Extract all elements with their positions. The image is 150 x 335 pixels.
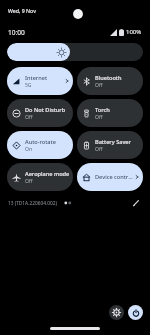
button[interactable]: Edit tiles: [130, 198, 142, 208]
staticText: Off: [95, 82, 103, 89]
staticText: Off: [95, 114, 103, 121]
staticText: Off: [25, 114, 33, 121]
staticText: Aeroplane mode: [25, 170, 70, 178]
staticText: Off: [95, 146, 103, 153]
staticText: Wed, 9 Nov: [8, 7, 36, 14]
button[interactable]: Settings: [109, 305, 124, 320]
staticText: Bluetooth: [95, 74, 122, 82]
button[interactable]: Do Not Disturb: [7, 99, 73, 127]
button[interactable]: Brightness: [7, 43, 143, 61]
staticText: Do Not Disturb: [25, 106, 66, 114]
button[interactable]: Bluetooth: [77, 67, 143, 95]
staticText: Off: [25, 178, 33, 185]
button[interactable]: Power: [128, 305, 143, 320]
button[interactable]: Device controls: [77, 163, 143, 191]
staticText: 5G: [25, 82, 32, 89]
staticText: Internet: [25, 74, 48, 82]
staticText: On: [25, 146, 32, 153]
staticText: Battery Saver: [95, 138, 131, 146]
staticText: 10:00: [8, 28, 25, 37]
staticText: Torch: [95, 106, 110, 114]
button[interactable]: Torch: [77, 99, 143, 127]
staticText: Auto-rotate: [25, 138, 56, 146]
staticText: Device controls: [95, 173, 134, 181]
button[interactable]: Internet: [7, 67, 73, 95]
button[interactable]: Battery Saver: [77, 131, 143, 159]
button[interactable]: Auto-rotate: [7, 131, 73, 159]
staticText: 13 (TD1A.220604.002): [8, 200, 57, 207]
staticText: 100%: [126, 28, 142, 36]
button[interactable]: Aeroplane mode: [7, 163, 73, 191]
